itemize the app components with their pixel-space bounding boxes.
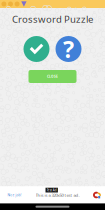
staticText: ? — [63, 33, 74, 65]
button[interactable]: Advertisement — [0, 186, 105, 203]
staticText: This is a 320x50 test ad. — [36, 192, 80, 198]
staticText: CLOSE — [47, 74, 58, 79]
staticText: Nice job! — [7, 193, 21, 197]
button[interactable]: Correct — [23, 36, 49, 62]
button[interactable]: Help — [55, 36, 81, 62]
staticText: Test Ad — [47, 188, 57, 192]
staticText: Crossword Puzzle — [12, 12, 93, 26]
button[interactable]: CLOSE — [28, 70, 76, 83]
